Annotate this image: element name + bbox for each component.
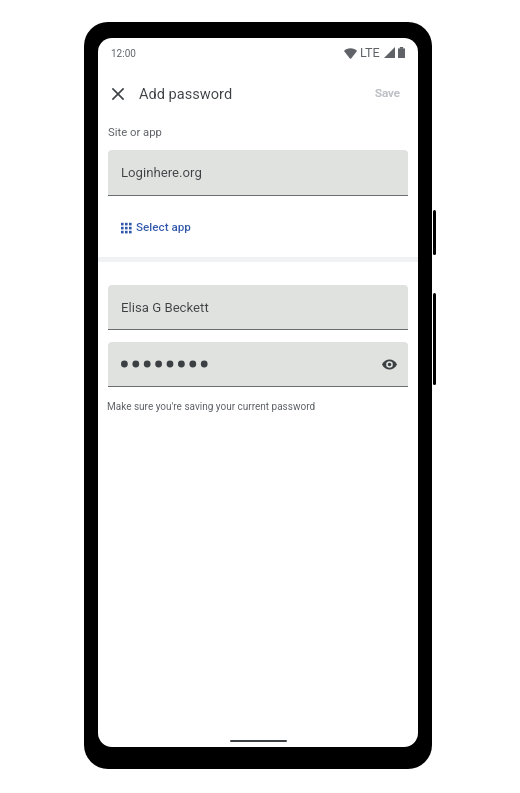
staticText: Add password <box>139 85 233 102</box>
button[interactable]: Show password <box>376 351 402 377</box>
staticText: Save <box>375 86 400 99</box>
button[interactable]: Elisa G Beckett <box>108 285 408 329</box>
staticText: Loginhere.org <box>121 165 202 180</box>
staticText: LTE <box>360 45 380 60</box>
button[interactable]: Show password <box>108 342 408 386</box>
button[interactable]: Select app <box>113 213 199 241</box>
staticText: Site or app <box>108 126 162 139</box>
button[interactable]: Loginhere.org <box>108 150 408 195</box>
staticText: Make sure you're saving your current pas… <box>107 401 316 413</box>
staticText: Select app <box>136 220 191 234</box>
button[interactable]: Save <box>366 80 409 105</box>
staticText: 12:00 <box>111 48 136 60</box>
button[interactable]: Close <box>104 80 132 108</box>
staticText: Elisa G Beckett <box>121 300 209 315</box>
